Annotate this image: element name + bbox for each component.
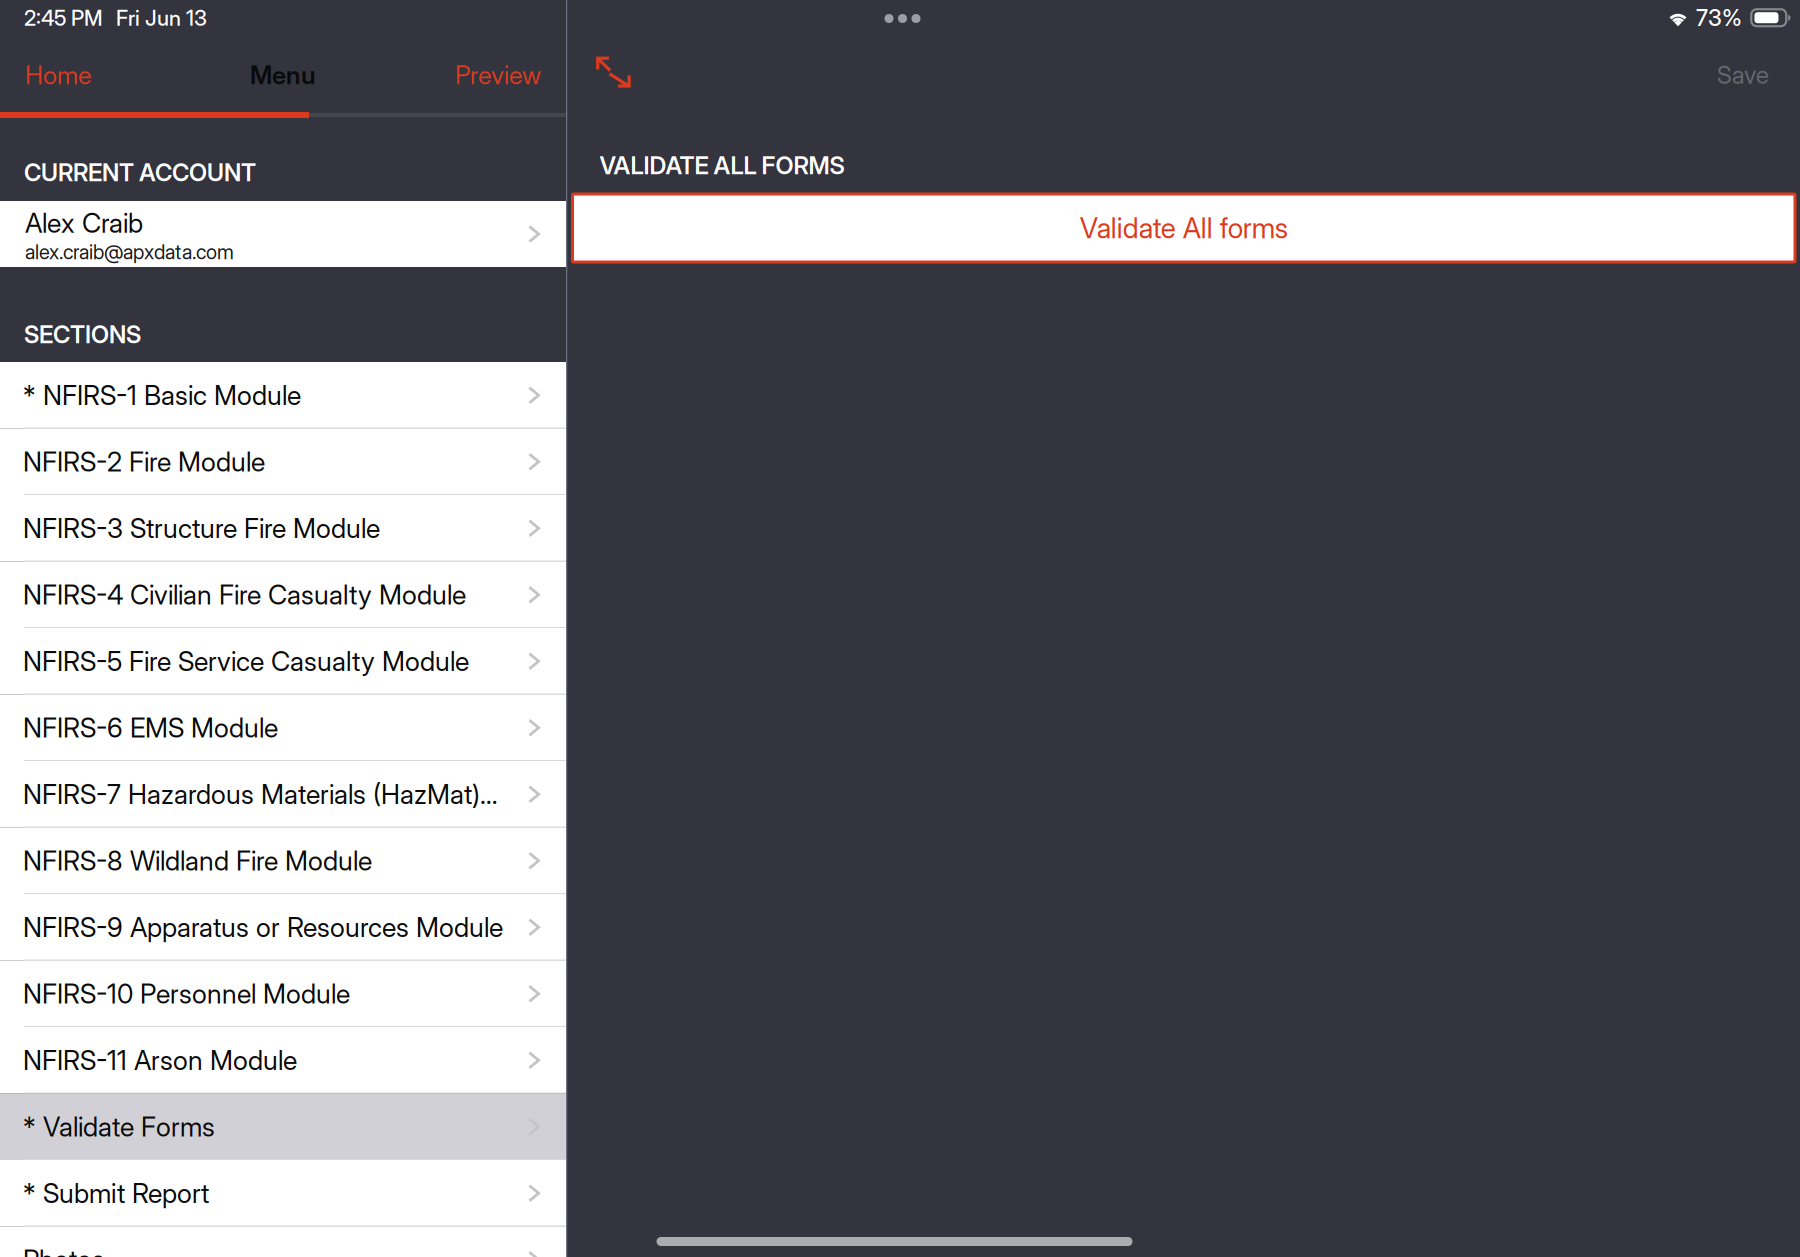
staticText: Save: [1717, 60, 1769, 89]
button[interactable]: Home: [0, 32, 117, 102]
staticText: Validate All forms: [1080, 211, 1288, 245]
staticText: Menu: [250, 60, 316, 90]
button[interactable]: NFIRS-10 Personnel Module: [0, 960, 566, 1027]
button[interactable]: Alex Craib: [0, 201, 566, 267]
staticText: NFIRS-10 Personnel Module: [23, 978, 350, 1010]
button[interactable]: NFIRS-7 Hazardous Materials (HazMat)…: [0, 761, 566, 827]
staticText: NFIRS-2 Fire Module: [23, 446, 265, 478]
button[interactable]: NFIRS-8 Wildland Fire Module: [0, 827, 566, 894]
button[interactable]: NFIRS-3 Structure Fire Module: [0, 495, 566, 561]
staticText: Photos: [23, 1244, 105, 1257]
button[interactable]: * Validate Forms: [0, 1093, 566, 1160]
staticText: 2:45 PM: [24, 5, 103, 31]
staticText: * NFIRS-1 Basic Module: [23, 379, 301, 411]
staticText: NFIRS-9 Apparatus or Resources Module: [23, 911, 503, 943]
staticText: Home: [25, 60, 92, 90]
staticText: CURRENT ACCOUNT: [24, 158, 256, 187]
button[interactable]: Menu: [225, 32, 341, 102]
staticText: * Validate Forms: [23, 1111, 215, 1143]
staticText: VALIDATE ALL FORMS: [599, 151, 844, 180]
staticText: NFIRS-4 Civilian Fire Casualty Module: [23, 579, 466, 611]
staticText: SECTIONS: [24, 320, 141, 349]
staticText: NFIRS-7 Hazardous Materials (HazMat)…: [23, 778, 498, 810]
button[interactable]: Save: [1699, 47, 1787, 102]
staticText: NFIRS-5 Fire Service Casualty Module: [23, 645, 469, 677]
staticText: NFIRS-6 EMS Module: [23, 712, 278, 744]
button[interactable]: NFIRS-5 Fire Service Casualty Module: [0, 628, 566, 694]
staticText: Preview: [455, 60, 541, 90]
button[interactable]: NFIRS-2 Fire Module: [0, 428, 566, 495]
button[interactable]: Validate All forms: [572, 194, 1795, 262]
button[interactable]: NFIRS-6 EMS Module: [0, 694, 566, 761]
staticText: NFIRS-8 Wildland Fire Module: [23, 845, 372, 877]
button[interactable]: Photos: [0, 1226, 566, 1257]
staticText: Alex Craib: [25, 207, 143, 239]
button[interactable]: * Submit Report: [0, 1160, 566, 1226]
button[interactable]: * NFIRS-1 Basic Module: [0, 362, 566, 428]
staticText: alex.craib@apxdata.com: [25, 240, 234, 264]
button[interactable]: Collapse sidebar: [583, 43, 643, 107]
staticText: NFIRS-3 Structure Fire Module: [23, 512, 380, 544]
button[interactable]: Preview: [430, 32, 566, 102]
button[interactable]: NFIRS-11 Arson Module: [0, 1027, 566, 1093]
staticText: Fri Jun 13: [116, 5, 207, 31]
button[interactable]: NFIRS-9 Apparatus or Resources Module: [0, 894, 566, 960]
staticText: NFIRS-11 Arson Module: [23, 1044, 297, 1076]
staticText: * Submit Report: [23, 1177, 209, 1209]
button[interactable]: NFIRS-4 Civilian Fire Casualty Module: [0, 561, 566, 628]
staticText: 73%: [1696, 4, 1742, 31]
